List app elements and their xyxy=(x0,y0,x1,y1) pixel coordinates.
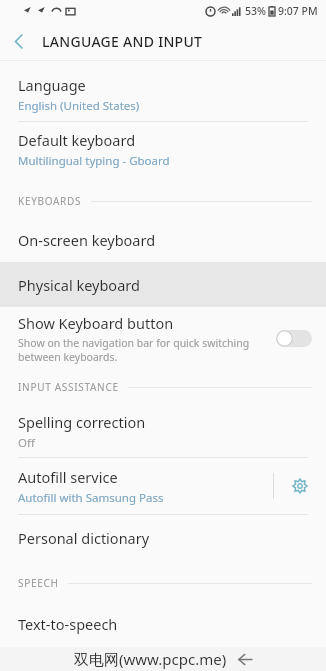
staticText: 9:07 PM xyxy=(278,4,318,18)
button[interactable]: Spelling correction xyxy=(0,405,326,457)
staticText: Physical keyboard xyxy=(18,275,140,295)
staticText: LANGUAGE AND INPUT xyxy=(42,32,203,51)
staticText: Language xyxy=(18,75,86,95)
button[interactable]: Language xyxy=(0,67,326,121)
button[interactable]: Show Keyboard button xyxy=(0,307,326,369)
staticText: English (United States) xyxy=(18,98,140,114)
staticText: Autofill service xyxy=(18,467,118,487)
staticText: Default keyboard xyxy=(18,130,136,150)
staticText: 双电网(www.pcpc.me) xyxy=(74,649,227,669)
button[interactable]: Personal dictionary xyxy=(0,515,326,561)
staticText: Show Keyboard button xyxy=(18,313,174,333)
button[interactable]: Autofill settings xyxy=(274,460,326,512)
staticText: Show on the navigation bar for quick swi… xyxy=(18,336,250,364)
staticText: Autofill with Samsung Pass xyxy=(18,490,164,506)
button[interactable]: Autofill service xyxy=(0,458,273,514)
staticText: Personal dictionary xyxy=(18,528,150,548)
button[interactable]: Physical keyboard xyxy=(0,262,326,307)
staticText: 53% xyxy=(245,4,266,18)
button[interactable]: Show Keyboard button toggle xyxy=(276,330,312,347)
staticText: SPEECH xyxy=(18,576,59,590)
staticText: Off xyxy=(18,435,35,451)
button[interactable]: Default keyboard xyxy=(0,122,326,177)
button[interactable]: On-screen keyboard xyxy=(0,217,326,262)
staticText: KEYBOARDS xyxy=(18,194,82,208)
button[interactable]: Text-to-speech xyxy=(0,601,326,647)
button[interactable]: Back xyxy=(0,22,38,60)
staticText: INPUT ASSISTANCE xyxy=(18,380,119,394)
staticText: Multilingual typing - Gboard xyxy=(18,153,170,169)
staticText: On-screen keyboard xyxy=(18,230,156,250)
staticText: Spelling correction xyxy=(18,412,146,432)
staticText: Text-to-speech xyxy=(18,614,118,634)
